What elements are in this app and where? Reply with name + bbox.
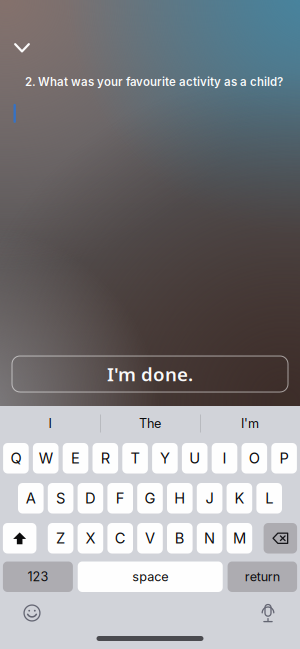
staticText: X xyxy=(85,529,95,547)
button[interactable]: Z xyxy=(48,523,73,553)
staticText: Q xyxy=(10,449,21,467)
button[interactable]: Emoji keyboard xyxy=(19,601,45,625)
button[interactable]: T xyxy=(122,443,148,473)
button[interactable]: S xyxy=(48,483,73,513)
staticText: J xyxy=(206,489,214,507)
button[interactable]: Shift xyxy=(3,523,36,553)
button[interactable]: R xyxy=(92,443,118,473)
button[interactable]: I xyxy=(212,443,237,473)
staticText: T xyxy=(131,449,140,467)
staticText: R xyxy=(101,449,110,467)
staticText: P xyxy=(280,449,289,467)
button[interactable]: return xyxy=(228,561,297,592)
staticText: O xyxy=(249,449,260,467)
staticText: G xyxy=(144,489,155,507)
button[interactable]: B xyxy=(167,523,193,553)
staticText: L xyxy=(265,489,273,507)
button[interactable]: P xyxy=(271,443,297,473)
staticText: space xyxy=(132,569,168,584)
button[interactable]: J xyxy=(197,483,222,513)
staticText: B xyxy=(175,529,185,547)
button[interactable]: W xyxy=(33,443,58,473)
button[interactable]: Y xyxy=(152,443,178,473)
button[interactable]: K xyxy=(227,483,252,513)
staticText: 123 xyxy=(27,569,48,584)
staticText: I'm done. xyxy=(107,362,193,386)
button[interactable]: A xyxy=(18,483,44,513)
button[interactable]: Delete xyxy=(264,523,297,553)
button[interactable]: F xyxy=(107,483,133,513)
button[interactable]: The xyxy=(100,406,200,441)
button[interactable]: G xyxy=(137,483,163,513)
button[interactable]: C xyxy=(107,523,133,553)
button[interactable]: D xyxy=(78,483,103,513)
staticText: H xyxy=(174,489,185,507)
staticText: U xyxy=(189,449,200,467)
button[interactable]: space xyxy=(78,561,223,592)
staticText: Y xyxy=(160,449,170,467)
button[interactable]: N xyxy=(197,523,222,553)
button[interactable]: L xyxy=(256,483,282,513)
button[interactable]: Dismiss xyxy=(7,35,37,61)
button[interactable]: I'm xyxy=(200,406,300,441)
staticText: A xyxy=(26,489,36,507)
staticText: V xyxy=(145,529,155,547)
staticText: K xyxy=(234,489,244,507)
staticText: I xyxy=(48,416,51,431)
staticText: D xyxy=(85,489,96,507)
button[interactable]: U xyxy=(182,443,207,473)
staticText: I'm xyxy=(241,416,259,431)
button[interactable]: I xyxy=(0,406,100,441)
staticText: The xyxy=(139,416,161,431)
staticText: F xyxy=(116,489,125,507)
staticText: Z xyxy=(56,529,65,547)
staticText: C xyxy=(115,529,126,547)
staticText: I xyxy=(222,449,226,467)
button[interactable]: I'm done. xyxy=(12,356,288,392)
button[interactable]: E xyxy=(63,443,88,473)
staticText: S xyxy=(56,489,65,507)
button[interactable]: 123 xyxy=(3,561,73,592)
button[interactable]: O xyxy=(241,443,267,473)
staticText: return xyxy=(245,569,280,584)
staticText: E xyxy=(71,449,80,467)
button[interactable]: M xyxy=(227,523,252,553)
staticText: N xyxy=(204,529,215,547)
staticText: M xyxy=(233,529,246,547)
button[interactable]: V xyxy=(137,523,163,553)
staticText: 2. What was your favourite activity as a… xyxy=(25,75,283,89)
button[interactable]: Dictation xyxy=(255,601,281,625)
button[interactable]: H xyxy=(167,483,193,513)
button[interactable]: X xyxy=(78,523,103,553)
button[interactable]: Q xyxy=(3,443,29,473)
staticText: W xyxy=(39,449,53,467)
